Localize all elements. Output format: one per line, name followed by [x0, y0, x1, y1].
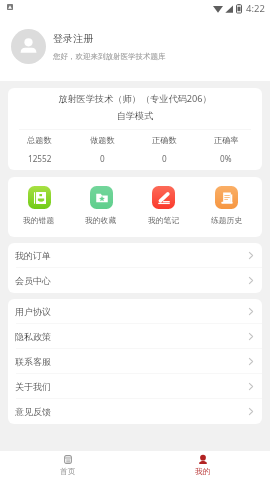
staticText: 正确率 — [214, 135, 239, 145]
staticText: 我的 — [195, 466, 211, 476]
button[interactable]: 我的订单 — [8, 243, 262, 268]
staticText: 我的笔记 — [148, 215, 180, 225]
button[interactable]: 我的笔记 — [132, 186, 195, 225]
staticText: 登录注册 — [53, 32, 93, 45]
button[interactable]: 练题历史 — [195, 186, 258, 225]
staticText: 我的订单 — [15, 250, 51, 261]
staticText: 会员中心 — [15, 275, 51, 286]
staticText: 正确数 — [152, 135, 177, 145]
staticText: 隐私政策 — [15, 331, 51, 342]
button[interactable]: 用户协议 — [8, 299, 262, 324]
staticText: 0 — [162, 153, 167, 164]
button[interactable]: 关于我们 — [8, 374, 262, 399]
button[interactable]: 联系客服 — [8, 349, 262, 374]
button[interactable]: 我的 — [135, 451, 270, 480]
staticText: 意见反馈 — [15, 406, 51, 417]
staticText: 您好，欢迎来到放射医学技术题库 — [53, 52, 166, 61]
staticText: 做题数 — [90, 135, 115, 145]
staticText: 关于我们 — [15, 381, 51, 392]
button[interactable]: 意见反馈 — [8, 399, 262, 424]
staticText: 我的错题 — [23, 215, 55, 225]
staticText: 0 — [100, 153, 105, 164]
staticText: 联系客服 — [15, 356, 51, 367]
button[interactable]: 会员中心 — [8, 268, 262, 293]
staticText: 总题数 — [27, 135, 52, 145]
button[interactable]: 首页 — [0, 451, 135, 480]
staticText: 自学模式 — [8, 110, 262, 122]
staticText: 4:22 — [246, 2, 265, 15]
button[interactable]: 隐私政策 — [8, 324, 262, 349]
staticText: 练题历史 — [211, 215, 243, 225]
button[interactable]: 我的错题 — [8, 186, 70, 225]
button[interactable]: 登录注册 — [0, 17, 270, 81]
staticText: 我的收藏 — [85, 215, 117, 225]
staticText: 12552 — [28, 153, 52, 164]
staticText: 首页 — [60, 466, 76, 476]
staticText: 放射医学技术（师）（专业代码206） — [8, 92, 262, 105]
staticText: 用户协议 — [15, 306, 51, 317]
button[interactable]: 我的收藏 — [70, 186, 132, 225]
staticText: 0% — [220, 153, 232, 164]
